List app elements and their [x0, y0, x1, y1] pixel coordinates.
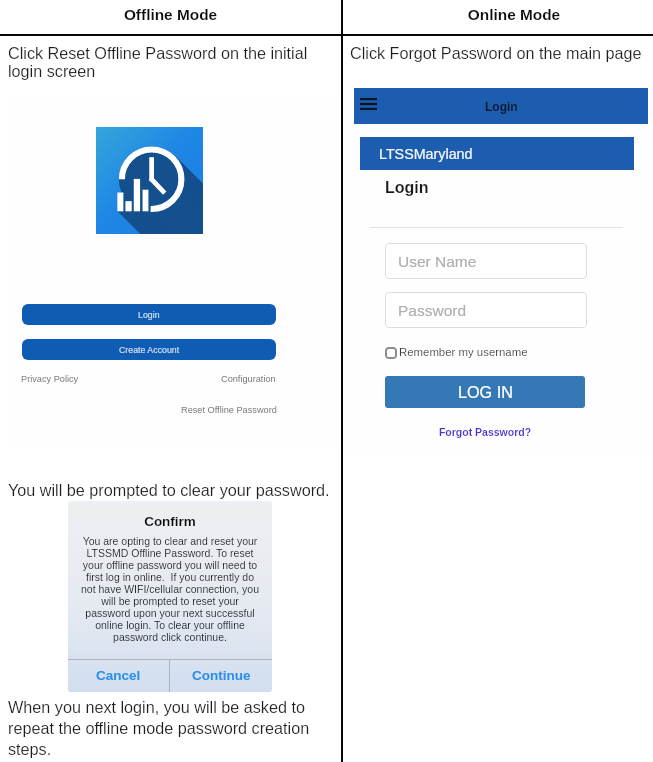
staticText: Privacy Policy — [21, 374, 79, 384]
staticText: You are opting to clear and reset your L… — [68, 535, 272, 643]
staticText: Continue — [192, 668, 251, 683]
button[interactable]: Continue — [170, 659, 272, 692]
staticText: LOG IN — [458, 383, 513, 401]
staticText: Configuration — [221, 374, 276, 384]
staticText: Forgot Password? — [385, 426, 585, 438]
staticText: Login — [485, 100, 518, 113]
staticText: Click Forgot Password on the main page — [350, 44, 642, 62]
button[interactable]: Login — [22, 304, 276, 325]
staticText: Online Mode — [341, 6, 653, 23]
button[interactable]: Forgot Password? — [385, 426, 585, 438]
staticText: Reset Offline Password — [181, 405, 277, 415]
staticText: User Name — [398, 253, 477, 270]
button[interactable]: User Name — [385, 243, 587, 279]
staticText: Offline Mode — [0, 6, 341, 23]
button[interactable]: Remember my username — [385, 346, 528, 359]
button[interactable]: LOG IN — [385, 376, 585, 408]
staticText: Login — [138, 310, 160, 320]
button[interactable]: LTSSMaryland — [360, 137, 634, 170]
button[interactable]: Privacy Policy — [21, 374, 79, 384]
staticText: Create Account — [119, 345, 180, 355]
button[interactable]: Login — [354, 88, 648, 124]
staticText: LTSSMaryland — [379, 146, 473, 162]
button[interactable]: Configuration — [221, 374, 276, 384]
button[interactable]: Cancel — [68, 659, 169, 692]
staticText: When you next login, you will be asked t… — [8, 698, 322, 758]
staticText: You will be prompted to clear your passw… — [8, 481, 330, 499]
staticText: Password — [398, 302, 467, 319]
button[interactable]: Password — [385, 292, 587, 328]
staticText: Click Reset Offline Password on the init… — [8, 44, 332, 81]
staticText: Remember my username — [399, 346, 528, 359]
staticText: Cancel — [96, 668, 141, 683]
button[interactable]: Reset Offline Password — [181, 405, 277, 415]
other: Menu — [360, 98, 377, 110]
staticText: Login — [385, 179, 429, 197]
staticText: Confirm — [68, 514, 272, 529]
button[interactable]: Create Account — [22, 339, 276, 360]
